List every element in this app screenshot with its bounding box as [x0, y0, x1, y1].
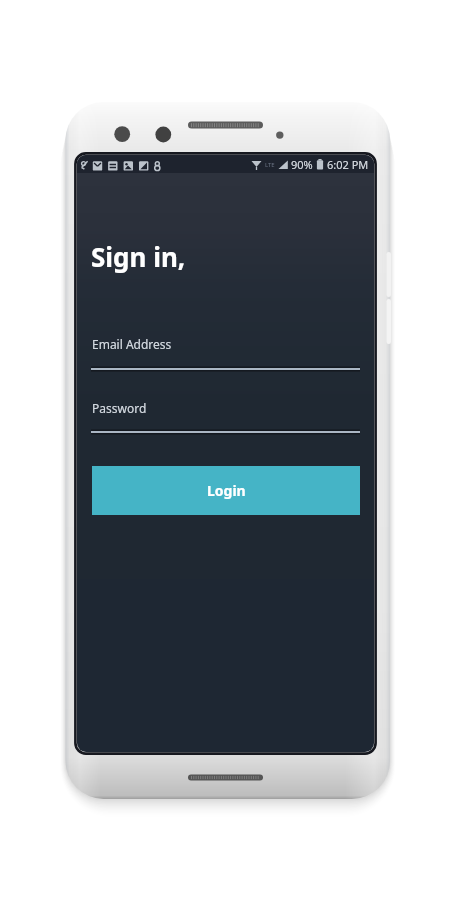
staticText: 6:02 PM: [327, 157, 369, 172]
button[interactable]: Login: [92, 466, 360, 515]
staticText: Sign in,: [91, 239, 186, 274]
staticText: LTE: [265, 161, 275, 169]
staticText: Login: [207, 481, 246, 500]
staticText: 90%: [291, 157, 313, 172]
staticText: Password: [92, 400, 147, 416]
staticText: Email Address: [92, 336, 172, 352]
